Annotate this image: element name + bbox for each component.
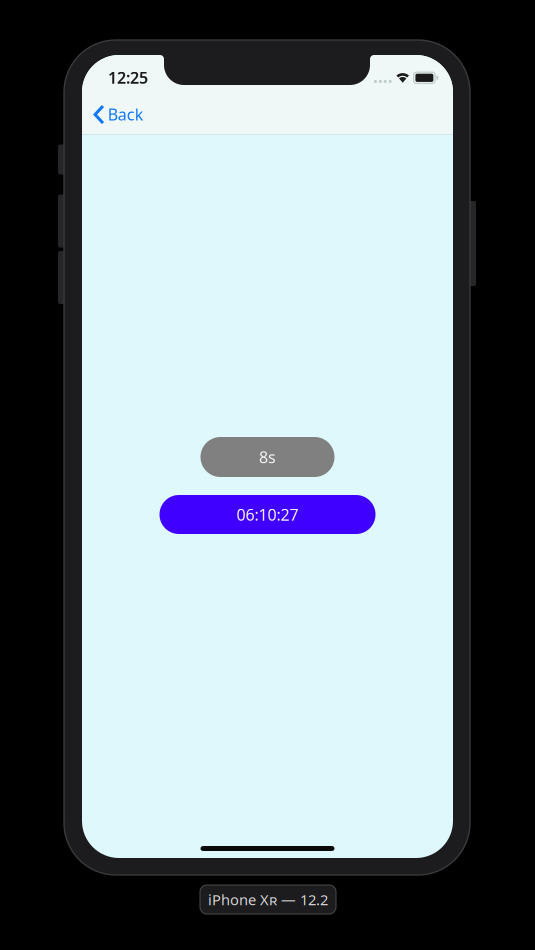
staticText: iPhone Xʀ — 12.2 bbox=[208, 890, 328, 909]
button[interactable]: 8s bbox=[200, 437, 334, 477]
staticText: 8s bbox=[259, 446, 276, 468]
staticText: 12:25 bbox=[108, 67, 148, 88]
button[interactable]: iPhone Xʀ — 12.2 bbox=[200, 885, 336, 914]
button[interactable]: 06:10:27 bbox=[159, 495, 375, 534]
button[interactable]: Back bbox=[80, 97, 156, 132]
staticText: 06:10:27 bbox=[236, 504, 298, 525]
staticText: Back bbox=[108, 104, 144, 125]
